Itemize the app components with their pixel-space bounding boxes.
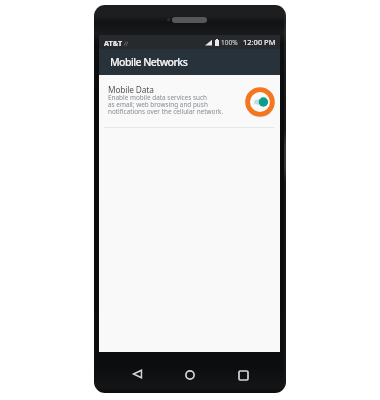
button[interactable]: Mobile Networks bbox=[99, 49, 280, 75]
staticText: AT&T bbox=[104, 38, 123, 48]
staticText: 12:00 PM bbox=[243, 37, 276, 47]
staticText: Enable mobile data services such as emai… bbox=[108, 93, 248, 116]
button[interactable]: Recent apps bbox=[230, 362, 256, 388]
staticText: Mobile Networks bbox=[110, 55, 188, 69]
staticText: 100% bbox=[221, 38, 238, 47]
staticText: Mobile Data bbox=[108, 84, 154, 95]
button[interactable]: Mobile data switch, on bbox=[250, 92, 270, 112]
button[interactable]: Home bbox=[177, 362, 203, 388]
button[interactable]: Mobile Data bbox=[99, 75, 280, 127]
button[interactable]: Back bbox=[124, 361, 150, 387]
